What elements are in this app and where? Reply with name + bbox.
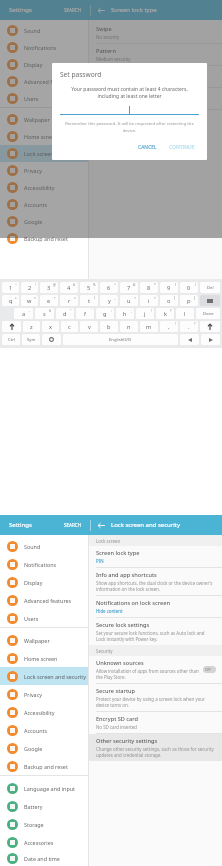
button[interactable]: v [80,321,98,332]
button[interactable]: Accessories [0,833,88,851]
button[interactable]: f [76,308,94,319]
button[interactable]: y [100,295,118,306]
button[interactable]: Google [0,213,88,230]
button[interactable]: Accounts [0,196,88,213]
button[interactable]: Battery [0,797,88,815]
button[interactable]: Wallpaper [0,111,88,128]
button[interactable]: Home screen [0,649,88,667]
button[interactable]: Accessibility [0,179,88,196]
button[interactable]: Shift [200,321,220,332]
button[interactable]: Screen lock type [89,546,222,567]
button[interactable]: 3 [40,282,58,293]
button[interactable]: Done [196,308,220,319]
button[interactable]: Notifications on lock screen [89,596,222,617]
button[interactable]: a [14,308,33,319]
button[interactable]: i [140,295,158,306]
button[interactable]: PIN [89,66,222,87]
button[interactable]: Encrypt SD card [89,712,222,733]
button[interactable]: q [2,295,19,306]
button[interactable]: Advanced features [0,591,88,609]
button[interactable]: 9 [160,282,178,293]
button[interactable]: CONTINUE [165,142,199,153]
button[interactable]: Notifications [0,555,88,573]
button[interactable]: Lock screen and security [0,667,88,685]
button[interactable]: Password [89,88,222,109]
button[interactable]: Secure lock settings [89,618,222,645]
button[interactable]: English(US) [63,334,178,345]
button[interactable]: s [35,308,54,319]
button[interactable]: Ctrl [2,334,20,345]
button[interactable]: z [23,321,40,332]
button[interactable]: , [160,321,178,332]
button[interactable]: Backspace [200,295,220,306]
button[interactable]: g [96,308,114,319]
button[interactable]: Unknown sources toggle [203,666,216,673]
button[interactable]: m [140,321,158,332]
button[interactable]: Advanced features [0,73,88,90]
button[interactable]: Language and input [0,779,88,797]
button[interactable]: p [180,295,198,306]
button[interactable]: Backup and reset [0,230,88,247]
button[interactable]: Sym [22,334,40,345]
button[interactable]: b [100,321,118,332]
button[interactable]: 0 [180,282,198,293]
button[interactable]: 2 [21,282,38,293]
button[interactable]: Date and time [0,851,88,866]
button[interactable]: d [56,308,74,319]
button[interactable]: t [80,295,98,306]
button[interactable]: 4 [60,282,78,293]
button[interactable]: 8 [140,282,158,293]
button[interactable]: Wallpaper [0,631,88,649]
button[interactable]: Privacy [0,162,88,179]
button[interactable]: Backup and reset [0,757,88,775]
button[interactable]: Sound [0,22,88,39]
button[interactable]: Next [201,334,220,345]
button[interactable]: Info and app shortcuts [89,568,222,595]
button[interactable]: Del [200,282,220,293]
button[interactable]: w [21,295,38,306]
button[interactable]: o [160,295,178,306]
button[interactable]: Shift [2,321,21,332]
button[interactable]: 5 [80,282,98,293]
button[interactable]: Lock screen and security [0,145,88,162]
button[interactable]: Sound [0,537,88,555]
button[interactable]: c [61,321,78,332]
button[interactable]: Google [0,739,88,757]
button[interactable]: Display [0,573,88,591]
button[interactable]: Back [91,0,111,20]
button[interactable]: Users [0,90,88,107]
button[interactable]: Privacy [0,685,88,703]
button[interactable]: k [156,308,174,319]
button[interactable]: None [89,110,222,124]
button[interactable]: l [176,308,194,319]
button[interactable]: Home screen [0,128,88,145]
button[interactable]: Users [0,609,88,627]
button[interactable]: CANCEL [134,142,161,153]
button[interactable]: Display [0,56,88,73]
button[interactable]: u [120,295,138,306]
button[interactable]: Accounts [0,721,88,739]
button[interactable]: Settings [42,334,61,345]
button[interactable]: e [40,295,58,306]
button[interactable]: Previous [180,334,199,345]
button[interactable]: Other security settings [89,734,222,761]
button[interactable]: SEARCH [64,7,82,13]
button[interactable]: Secure startup [89,684,222,711]
button[interactable]: n [120,321,138,332]
button[interactable]: h [116,308,134,319]
button[interactable]: Accessibility [0,703,88,721]
button[interactable]: j [136,308,154,319]
button[interactable]: Unknown sources [89,656,222,683]
button[interactable]: Swipe [89,22,222,43]
button[interactable]: Notifications [0,39,88,56]
button[interactable]: 7 [120,282,138,293]
button[interactable]: Pattern [89,44,222,65]
button[interactable]: . [180,321,198,332]
button[interactable]: Storage [0,815,88,833]
button[interactable]: x [42,321,59,332]
button[interactable]: Back [91,515,111,535]
button[interactable]: r [60,295,78,306]
button[interactable]: 1 [2,282,19,293]
button[interactable]: SEARCH [64,522,82,528]
button[interactable]: 6 [100,282,118,293]
